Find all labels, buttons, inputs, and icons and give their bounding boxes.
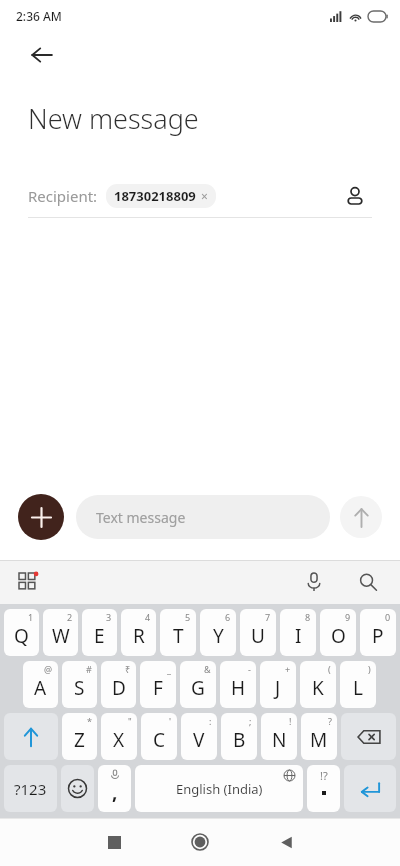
staticText: X [113,727,125,753]
button[interactable]: Home [157,818,243,866]
staticText: M [310,727,328,753]
staticText: R [133,623,145,649]
staticText: " [128,715,132,727]
staticText: F [153,675,163,701]
staticText: 18730218809 [114,187,196,205]
staticText: !? [320,768,328,783]
button[interactable]: " [101,713,137,760]
button[interactable]: 5 [160,609,196,656]
staticText: 2:36 AM [16,8,62,24]
staticText: G [191,675,205,701]
button[interactable]: 7 [240,609,276,656]
button[interactable]: + [260,661,296,708]
staticText: H [231,675,246,701]
staticText: # [86,663,92,675]
button[interactable]: ; [221,713,257,760]
button[interactable]: Search [352,566,384,598]
button[interactable]: 2 [43,609,78,656]
staticText: 1 [28,611,34,623]
button[interactable]: 8 [280,609,316,656]
button[interactable]: Symbols [4,765,57,812]
staticText: - [248,663,251,675]
staticText: ; [249,715,252,727]
button[interactable]: 3 [82,609,117,656]
staticText: + [285,663,291,675]
button[interactable] [20,33,64,77]
staticText: _ [167,663,171,675]
button[interactable]: English (India) space [135,765,303,812]
button[interactable]: Back [243,818,329,866]
staticText: & [204,663,211,675]
button[interactable]: Period [307,765,340,812]
staticText: 5 [185,611,191,623]
button[interactable]: 1 [4,609,39,656]
staticText: O [331,623,346,649]
button[interactable]: Contacts [338,179,372,213]
staticText: S [74,675,85,701]
button[interactable]: * [62,713,97,760]
staticText: ' [169,715,172,727]
button[interactable]: Comma [98,765,131,812]
staticText: English (India) [176,780,263,798]
staticText: New message [28,100,199,137]
button[interactable]: ₹ [101,661,136,708]
staticText: : [209,715,212,727]
staticText: Z [74,727,85,753]
button[interactable]: : [181,713,217,760]
button[interactable]: Emoji [61,765,94,812]
staticText: P [372,623,384,649]
staticText: N [272,727,287,753]
button[interactable]: - [220,661,256,708]
staticText: T [173,623,184,649]
button[interactable]: @ [23,661,58,708]
staticText: 7 [265,611,271,623]
staticText: ₹ [125,663,131,675]
staticText: ?123 [14,779,47,799]
button[interactable]: 18730218809 [106,184,216,208]
button[interactable]: 4 [121,609,156,656]
button[interactable]: Enter [344,765,396,812]
button[interactable]: Shift [4,713,58,760]
button[interactable]: & [180,661,216,708]
staticText: J [275,675,281,701]
staticText: @ [44,663,53,675]
staticText: 0 [385,611,391,623]
staticText: C [153,727,166,753]
button[interactable]: Add attachment [18,494,64,540]
staticText: U [251,623,265,649]
staticText: K [312,675,324,701]
button[interactable]: ? [301,713,337,760]
button[interactable]: ! [261,713,297,760]
staticText: ( [328,663,331,675]
button[interactable]: # [62,661,97,708]
staticText: L [353,675,363,701]
button[interactable]: ) [340,661,376,708]
staticText: ? [328,715,332,727]
button[interactable]: Send [340,496,382,538]
staticText: B [233,727,246,753]
button[interactable]: _ [140,661,176,708]
staticText: Text message [96,508,186,527]
staticText: A [34,675,47,701]
staticText: 6 [225,611,231,623]
button[interactable]: 0 [360,609,396,656]
button[interactable]: 9 [320,609,356,656]
staticText: D [112,675,126,701]
staticText: ) [368,663,371,675]
button[interactable]: Recents [71,818,157,866]
staticText: 9 [345,611,351,623]
button[interactable]: ( [300,661,336,708]
button[interactable]: Backspace [341,713,396,760]
staticText: V [193,727,205,753]
staticText: 3 [106,611,112,623]
button[interactable]: Keyboard options [10,564,46,600]
button[interactable]: Voice input [298,566,330,598]
other: Back [20,32,400,78]
button[interactable]: Text message [76,495,330,539]
staticText: I [295,623,302,649]
staticText: 2 [67,611,73,623]
button[interactable]: 6 [200,609,236,656]
button[interactable]: ' [141,713,177,760]
staticText: Y [213,623,224,649]
staticText: , [112,779,118,805]
